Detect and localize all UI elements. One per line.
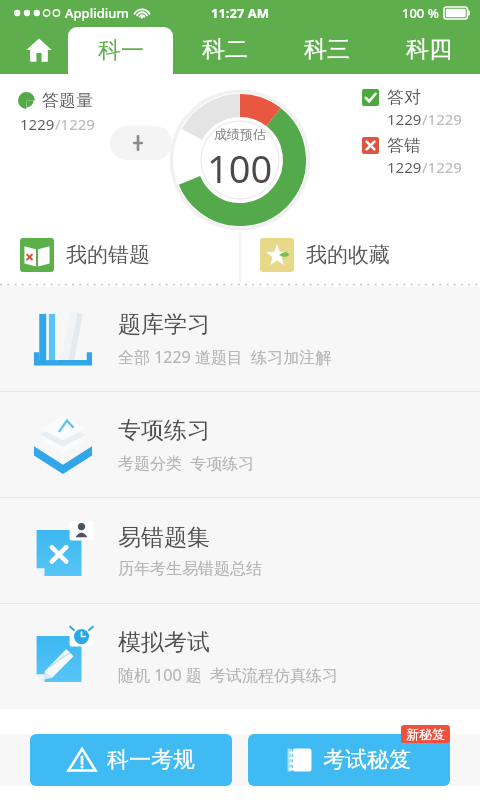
button[interactable]: 易错题集 bbox=[0, 498, 480, 603]
button[interactable]: 科一考规 bbox=[30, 734, 232, 786]
staticText: 100 % bbox=[402, 4, 439, 22]
button[interactable]: 模拟考试 bbox=[0, 604, 480, 709]
button[interactable]: Add bbox=[110, 126, 172, 160]
staticText: 答错 bbox=[387, 135, 421, 156]
staticText: Applidium bbox=[65, 4, 129, 22]
button[interactable]: 专项练习 bbox=[0, 392, 480, 497]
staticText: 考试秘笈 bbox=[323, 746, 411, 774]
button[interactable]: 科二 bbox=[173, 25, 276, 74]
button[interactable]: 考试秘笈 bbox=[248, 734, 450, 786]
button[interactable]: 科三 bbox=[276, 25, 378, 74]
staticText: 随机 100 题 考试流程仿真练习 bbox=[118, 664, 339, 686]
button[interactable]: 我的错题 bbox=[0, 227, 240, 283]
staticText: 11:27 AM bbox=[211, 4, 270, 22]
staticText: /1229 bbox=[55, 114, 95, 134]
staticText: 历年考生易错题总结 bbox=[118, 559, 262, 579]
staticText: 科二 bbox=[202, 35, 248, 64]
staticText: 100 bbox=[207, 142, 273, 194]
staticText: 新秘笈 bbox=[406, 726, 445, 742]
button[interactable]: Home bbox=[10, 25, 68, 74]
staticText: 科四 bbox=[406, 35, 452, 64]
staticText: 模拟考试 bbox=[118, 628, 210, 657]
staticText: 1229 bbox=[387, 157, 422, 177]
staticText: 考题分类 专项练习 bbox=[118, 452, 255, 474]
staticText: 全部 1229 道题目 练习加注解 bbox=[118, 346, 332, 368]
staticText: 答对 bbox=[387, 87, 421, 108]
button[interactable]: 科四 bbox=[378, 25, 480, 74]
staticText: /1229 bbox=[422, 109, 462, 129]
staticText: /1229 bbox=[422, 157, 462, 177]
staticText: 我的错题 bbox=[66, 242, 150, 268]
button[interactable]: 题库学习 bbox=[0, 286, 480, 391]
staticText: 成绩预估 bbox=[214, 126, 266, 142]
staticText: 1229 bbox=[387, 109, 422, 129]
staticText: 题库学习 bbox=[118, 310, 210, 339]
staticText: 科一考规 bbox=[107, 746, 195, 774]
staticText: 科三 bbox=[304, 35, 350, 64]
staticText: 易错题集 bbox=[118, 523, 210, 552]
staticText: 1229 bbox=[20, 114, 55, 134]
button[interactable]: 我的收藏 bbox=[240, 227, 480, 283]
staticText: 专项练习 bbox=[118, 416, 210, 445]
staticText: 我的收藏 bbox=[306, 242, 390, 268]
staticText: 科一 bbox=[98, 36, 144, 65]
staticText: 答题量 bbox=[42, 90, 93, 111]
button[interactable]: 科一 bbox=[68, 27, 173, 74]
